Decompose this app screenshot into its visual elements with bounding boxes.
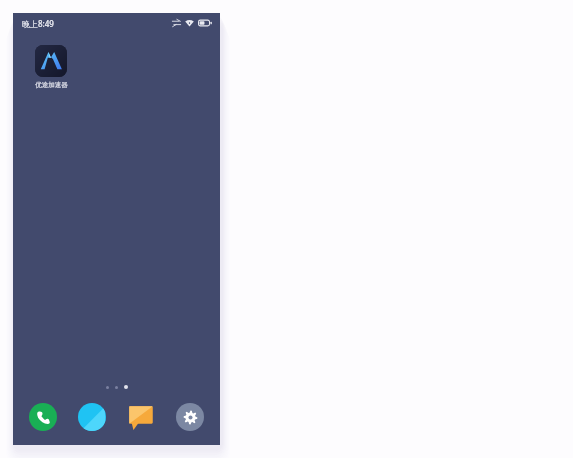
button[interactable]: Browser (78, 403, 106, 431)
button[interactable]: Phone (29, 403, 57, 431)
button[interactable]: Messaging (127, 403, 155, 431)
staticText: 晚上8:49 (22, 18, 54, 29)
staticText: 优途加速器 (35, 81, 68, 89)
button[interactable]: Settings (176, 403, 204, 431)
button[interactable]: 优途加速器 (27, 45, 75, 89)
